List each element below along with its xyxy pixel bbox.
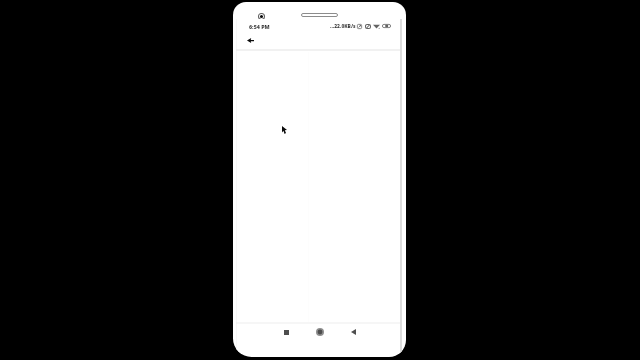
staticText: 6:54 PM — [249, 23, 270, 30]
button[interactable]: Home — [311, 323, 329, 341]
button[interactable]: Recent apps — [277, 323, 295, 341]
button[interactable]: Navigate up — [241, 31, 260, 50]
staticText: ...22.0KB/s — [330, 23, 356, 30]
button[interactable]: Back — [344, 323, 362, 341]
